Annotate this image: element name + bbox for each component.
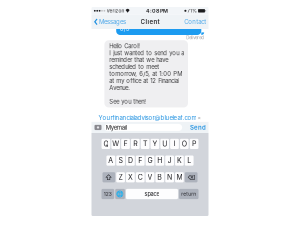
- button[interactable]: Send: [190, 124, 206, 131]
- staticText: C: [138, 173, 143, 181]
- staticText: R: [133, 140, 137, 148]
- staticText: ×: [198, 115, 202, 121]
- button[interactable]: N: [165, 172, 174, 182]
- staticText: F: [138, 156, 142, 165]
- button[interactable]: W: [111, 139, 120, 149]
- button[interactable]: ⌫: [185, 172, 197, 182]
- staticText: Verizon: [106, 8, 124, 14]
- button[interactable]: return: [179, 189, 198, 199]
- button[interactable]: C: [136, 172, 145, 182]
- staticText: K: [177, 156, 182, 165]
- staticText: V: [147, 173, 152, 181]
- staticText: Client: [140, 18, 159, 25]
- staticText: J: [168, 156, 172, 165]
- staticText: U: [162, 140, 167, 148]
- button[interactable]: Camera: [94, 124, 102, 131]
- button[interactable]: R: [131, 139, 140, 149]
- button[interactable]: M: [175, 172, 184, 182]
- button[interactable]: Contact: [184, 15, 208, 29]
- button[interactable]: O: [180, 139, 189, 149]
- button[interactable]: H: [155, 155, 164, 166]
- staticText: Avenue.: [109, 84, 130, 91]
- staticText: Yourfinancialadvisor@blueleaf.com: [98, 114, 196, 121]
- button[interactable]: T: [141, 139, 149, 149]
- staticText: Contact: [184, 18, 206, 25]
- staticText: at my office at 12 Financial: [109, 77, 179, 84]
- staticText: 71%: [187, 8, 197, 14]
- staticText: Hello Carol!: [109, 42, 140, 50]
- staticText: I: [173, 140, 175, 148]
- staticText: H: [157, 156, 162, 165]
- staticText: Delivered: [186, 35, 204, 40]
- button[interactable]: Q: [101, 139, 110, 149]
- staticText: scheduled to meet: [109, 63, 159, 70]
- button[interactable]: I: [170, 139, 179, 149]
- staticText: D: [128, 156, 133, 165]
- staticText: E: [123, 140, 127, 148]
- staticText: Y: [152, 140, 157, 148]
- staticText: return: [181, 191, 196, 197]
- staticText: W: [112, 140, 119, 148]
- button[interactable]: ⇧: [102, 172, 115, 182]
- staticText: 123: [104, 191, 112, 197]
- staticText: Z: [119, 173, 123, 181]
- button[interactable]: P: [190, 139, 198, 149]
- button[interactable]: Yourfinancialadvisor@blueleaf.com: [91, 114, 208, 122]
- button[interactable]: 123: [101, 189, 114, 199]
- staticText: space: [144, 191, 159, 197]
- button[interactable]: F: [136, 155, 145, 166]
- staticText: M: [176, 173, 182, 181]
- staticText: Messages: [99, 18, 126, 25]
- staticText: 6/3: [120, 25, 130, 32]
- button[interactable]: space: [126, 189, 178, 199]
- button[interactable]: L: [185, 155, 194, 166]
- staticText: 4:08 PM: [146, 8, 168, 14]
- staticText: Q: [103, 140, 108, 148]
- button[interactable]: X: [126, 172, 135, 182]
- staticText: X: [128, 173, 133, 181]
- staticText: I just wanted to send you a: [109, 49, 184, 56]
- staticText: ⇧: [105, 173, 113, 182]
- button[interactable]: J: [165, 155, 174, 166]
- staticText: Myemail: [106, 124, 127, 131]
- button[interactable]: S: [116, 155, 125, 166]
- button[interactable]: Messages: [91, 15, 126, 29]
- button[interactable]: V: [146, 172, 154, 182]
- button[interactable]: K: [175, 155, 184, 166]
- button[interactable]: G: [146, 155, 154, 166]
- staticText: O: [182, 140, 187, 148]
- button[interactable]: A: [106, 155, 115, 166]
- staticText: ⌫: [187, 173, 195, 181]
- staticText: G: [147, 156, 152, 165]
- staticText: See you then!: [109, 98, 146, 105]
- staticText: reminder that we have: [109, 56, 168, 63]
- button[interactable]: Y: [150, 139, 159, 149]
- staticText: L: [187, 156, 191, 165]
- button[interactable]: D: [126, 155, 135, 166]
- button[interactable]: Z: [116, 172, 125, 182]
- staticText: A: [108, 156, 113, 165]
- staticText: Send: [190, 124, 206, 131]
- staticText: S: [119, 156, 123, 165]
- staticText: 🌐: [116, 190, 124, 198]
- button[interactable]: B: [155, 172, 164, 182]
- staticText: T: [143, 140, 147, 148]
- button[interactable]: U: [160, 139, 169, 149]
- staticText: tomorrow, 6/5, at 1:00 PM: [109, 70, 182, 77]
- button[interactable]: E: [121, 139, 130, 149]
- staticText: N: [167, 173, 172, 181]
- staticText: P: [192, 140, 196, 148]
- button[interactable]: 🌐: [115, 189, 125, 199]
- staticText: B: [157, 173, 162, 181]
